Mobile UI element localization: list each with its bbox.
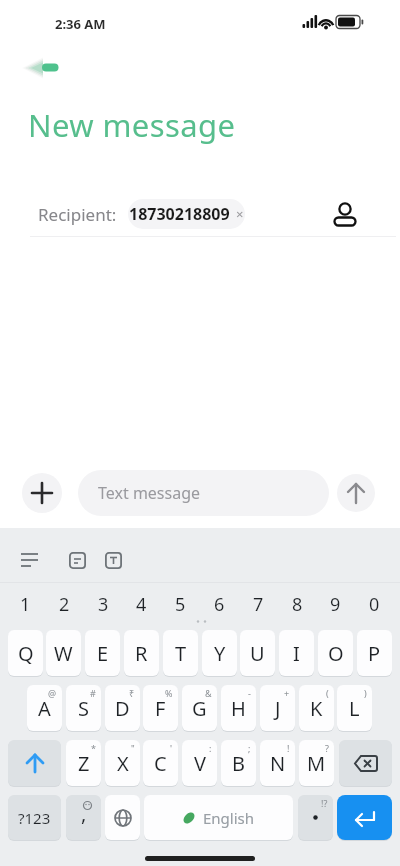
staticText: U [250, 640, 265, 667]
staticText: N [270, 750, 286, 777]
button[interactable]: L [337, 685, 372, 731]
staticText: ( [326, 687, 329, 699]
button[interactable]: X [105, 740, 140, 786]
button[interactable] [69, 552, 86, 569]
staticText: ! [287, 742, 290, 754]
button[interactable]: K [299, 685, 334, 731]
button[interactable]: A [27, 685, 62, 731]
button[interactable]: , [66, 795, 101, 840]
button[interactable]: G [182, 685, 217, 731]
staticText: ₹ [129, 687, 135, 699]
staticText: + [284, 687, 290, 699]
button[interactable] [337, 795, 392, 840]
button[interactable]: English [144, 795, 293, 840]
button[interactable]: S [66, 685, 101, 731]
staticText: @ [48, 687, 57, 699]
button[interactable]: O [318, 630, 353, 676]
staticText: W [54, 640, 73, 667]
button[interactable]: T [163, 630, 198, 676]
staticText: Y [214, 640, 226, 667]
button[interactable]: 2 [47, 589, 82, 619]
staticText: D [115, 695, 130, 722]
button[interactable]: V [182, 740, 217, 786]
button[interactable]: Text message [78, 470, 329, 516]
button[interactable]: U [240, 630, 275, 676]
button[interactable] [105, 795, 140, 840]
button[interactable]: Z [66, 740, 101, 786]
staticText: M [307, 750, 326, 777]
button[interactable]: 1 [8, 589, 43, 619]
staticText: Recipient: [38, 203, 117, 226]
staticText: 4 [136, 592, 147, 617]
button[interactable]: 9 [318, 589, 353, 619]
button[interactable]: C [143, 740, 178, 786]
button[interactable]: 3 [86, 589, 121, 619]
staticText: S [78, 695, 89, 722]
staticText: 5 [175, 592, 186, 617]
button[interactable]: F [143, 685, 178, 731]
button[interactable] [298, 795, 333, 840]
staticText: B [232, 750, 245, 777]
button[interactable]: Q [8, 630, 43, 676]
button[interactable]: W [46, 630, 81, 676]
button[interactable]: Y [202, 630, 237, 676]
button[interactable]: 7 [241, 589, 276, 619]
button[interactable] [332, 200, 358, 228]
staticText: E [97, 640, 109, 667]
staticText: 0 [369, 592, 380, 617]
staticText: L [349, 695, 360, 722]
staticText: Text message [98, 482, 201, 504]
staticText: # [90, 687, 96, 699]
staticText: T [175, 640, 187, 667]
button[interactable]: D [105, 685, 140, 731]
staticText: * [91, 742, 96, 754]
button[interactable]: 8 [280, 589, 315, 619]
staticText: 1 [20, 592, 31, 617]
button[interactable]: 5 [163, 589, 198, 619]
button[interactable] [22, 473, 62, 513]
button[interactable]: 4 [124, 589, 159, 619]
staticText: K [310, 695, 323, 722]
button[interactable] [339, 740, 392, 786]
staticText: R [135, 640, 148, 667]
staticText: : [209, 742, 212, 754]
staticText: ; [248, 742, 251, 754]
staticText: 8 [292, 592, 303, 617]
staticText: Z [78, 750, 90, 777]
staticText: C [154, 750, 167, 777]
button[interactable]: 18730218809 [128, 199, 245, 229]
staticText: 2 [59, 592, 70, 617]
button[interactable]: ?123 [8, 795, 61, 840]
button[interactable]: J [260, 685, 295, 731]
button[interactable] [8, 740, 61, 786]
button[interactable] [337, 474, 375, 512]
button[interactable]: I [279, 630, 314, 676]
staticText: V [194, 750, 206, 777]
button[interactable] [22, 56, 62, 80]
staticText: I [293, 640, 300, 667]
button[interactable]: 6 [202, 589, 237, 619]
button[interactable]: H [221, 685, 256, 731]
staticText: H [231, 695, 246, 722]
button[interactable] [21, 553, 38, 567]
button[interactable]: M [299, 740, 334, 786]
staticText: , [81, 800, 87, 827]
staticText: 7 [253, 592, 264, 617]
staticText: 6 [214, 592, 225, 617]
button[interactable]: N [260, 740, 295, 786]
staticText: G [192, 695, 207, 722]
staticText: ? [325, 742, 329, 754]
staticText: ' [170, 742, 173, 754]
button[interactable]: P [357, 630, 392, 676]
staticText: English [203, 808, 255, 828]
staticText: " [131, 742, 135, 754]
staticText: O [328, 640, 344, 667]
staticText: New message [28, 104, 236, 146]
button[interactable]: B [221, 740, 256, 786]
button[interactable]: R [124, 630, 159, 676]
button[interactable]: E [85, 630, 120, 676]
staticText: 9 [330, 592, 341, 617]
staticText: Q [18, 640, 34, 667]
button[interactable] [105, 552, 122, 569]
button[interactable]: 0 [357, 589, 392, 619]
